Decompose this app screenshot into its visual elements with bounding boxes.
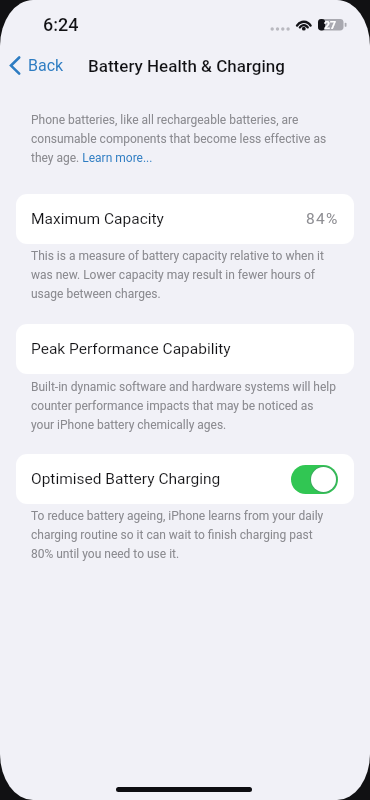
staticText: Battery Health & Charging [88,56,285,76]
staticText: Optimised Battery Charging [31,470,221,488]
button[interactable]: Back [6,53,64,77]
button[interactable]: Optimised Battery Charging [16,454,354,504]
staticText: Built-in dynamic software and hardware s… [31,380,337,432]
staticText: 84% [306,210,339,228]
button[interactable]: Maximum Capacity [16,194,354,244]
button[interactable]: Peak Performance Capability [16,324,354,374]
staticText: Back [28,56,64,75]
staticText: 6:24 [43,14,79,35]
staticText: To reduce battery ageing, iPhone learns … [31,509,337,561]
staticText: Peak Performance Capability [31,340,231,358]
button[interactable]: Optimised Battery Charging [291,465,338,494]
staticText: This is a measure of battery capacity re… [31,249,337,301]
staticText: Phone batteries, like all rechargeable b… [31,113,337,165]
staticText: Maximum Capacity [31,210,164,228]
staticText: 27 [324,19,337,31]
